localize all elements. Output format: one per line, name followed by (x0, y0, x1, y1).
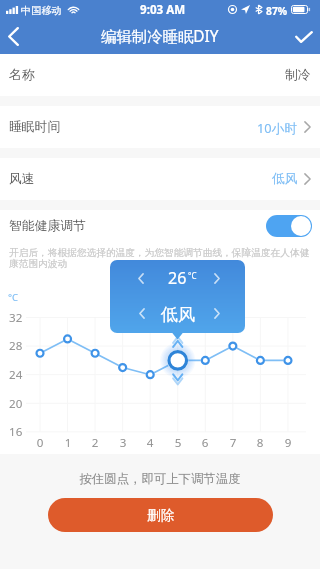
button[interactable]: 名称 (0, 54, 320, 96)
staticText: 32 (9, 310, 27, 326)
staticText: 6 (196, 435, 214, 451)
staticText: 低风 (272, 171, 298, 187)
staticText: 10小时 (257, 119, 298, 136)
staticText: 9:03 AM (140, 2, 186, 18)
staticText: 名称 (9, 67, 35, 83)
button[interactable]: 删除 (48, 498, 273, 532)
staticText: 2 (86, 435, 104, 451)
button[interactable]: Decrease temperature (134, 272, 147, 285)
staticText: 20 (9, 396, 27, 412)
staticText: 智能健康调节 (9, 218, 86, 234)
staticText: 8 (251, 435, 269, 451)
staticText: 编辑制冷睡眠DIY (101, 26, 219, 47)
staticText: 24 (9, 367, 27, 383)
staticText: 0 (31, 435, 49, 451)
staticText: 87% (266, 4, 288, 18)
staticText: °C (8, 291, 19, 304)
button[interactable]: Next fan speed (210, 307, 223, 320)
button[interactable]: Previous fan speed (135, 307, 148, 320)
staticText: 按住圆点，即可上下调节温度 (0, 471, 320, 487)
button[interactable]: Back (0, 19, 30, 54)
staticText: 低风 (159, 303, 197, 325)
staticText: 睡眠时间 (9, 119, 61, 135)
staticText: 风速 (9, 171, 35, 187)
button[interactable]: 智能健康调节 (0, 210, 320, 242)
button[interactable]: 睡眠时间 (0, 106, 320, 148)
staticText: 16 (9, 424, 27, 440)
button[interactable]: Smart health toggle (266, 215, 312, 237)
staticText: 3 (114, 435, 132, 451)
staticText: 删除 (147, 507, 175, 524)
staticText: 制冷 (285, 67, 311, 83)
staticText: 中国移动 (21, 4, 62, 17)
staticText: 7 (224, 435, 242, 451)
staticText: 1 (59, 435, 77, 451)
staticText: 4 (141, 435, 159, 451)
staticText: 28 (9, 338, 27, 354)
button[interactable]: Increase temperature (210, 272, 223, 285)
staticText: 26 (168, 267, 187, 289)
staticText: °C (188, 270, 197, 281)
staticText: 9 (279, 435, 297, 451)
button[interactable]: 风速 (0, 158, 320, 200)
button[interactable]: Confirm (288, 19, 320, 54)
staticText: 开启后，将根据您选择的温度，为您智能调节曲线，保障温度在人体健康范围内波动 (9, 247, 315, 270)
staticText: 5 (169, 435, 187, 451)
